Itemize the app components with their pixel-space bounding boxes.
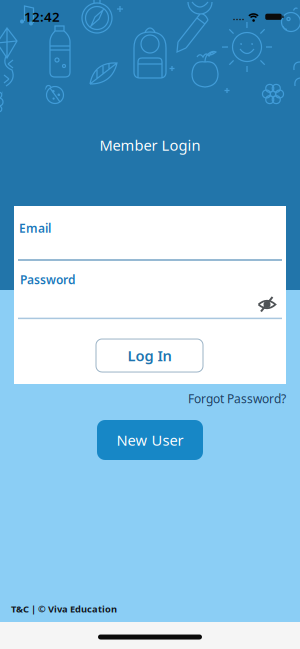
staticText: Email — [19, 220, 51, 236]
button[interactable]: T&C | © Viva Education — [11, 603, 117, 615]
staticText: New User — [116, 430, 183, 450]
staticText: T&C | © Viva Education — [11, 603, 117, 615]
staticText: 12:42 — [24, 8, 60, 25]
button[interactable]: New User — [97, 420, 203, 460]
button[interactable]: Show password — [257, 296, 277, 313]
staticText: Forgot Password? — [188, 390, 286, 406]
staticText: Member Login — [99, 135, 200, 155]
button[interactable]: Log In — [96, 339, 203, 372]
button[interactable]: Forgot Password? — [188, 390, 286, 406]
staticText: Log In — [127, 346, 171, 365]
staticText: Password — [20, 271, 76, 287]
